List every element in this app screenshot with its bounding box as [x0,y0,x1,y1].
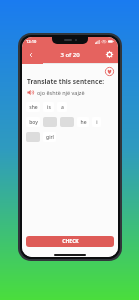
button[interactable] [26,132,40,142]
button[interactable]: boy [26,117,40,127]
staticText: 3 of 20 [60,51,80,59]
button[interactable]: Play audio [27,89,34,96]
button[interactable]: she [26,102,40,112]
button[interactable]: Settings [103,48,116,61]
staticText: she [29,104,38,111]
button[interactable]: Back [24,48,37,61]
button[interactable]: he [77,117,89,127]
button[interactable]: girl [43,132,56,142]
button[interactable] [60,117,74,127]
button[interactable]: Lives [105,67,114,76]
staticText: i [96,119,98,126]
staticText: boy [29,119,38,126]
button[interactable]: a [57,102,67,112]
staticText: Translate this sentence: [27,77,105,86]
button[interactable]: i [92,117,101,127]
staticText: CHECK [62,238,79,245]
button[interactable]: CHECK [26,236,114,247]
button[interactable]: is [43,102,54,112]
staticText: girl [46,134,54,141]
staticText: ojo êshtë një vajzë [37,89,85,96]
button[interactable] [43,117,57,127]
staticText: 12:10 [26,39,37,44]
staticText: a [61,104,64,111]
staticText: he [80,119,87,126]
staticText: is [47,104,51,111]
